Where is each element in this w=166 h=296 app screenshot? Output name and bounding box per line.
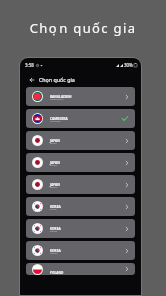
staticText: POLAND bbox=[50, 271, 64, 275]
button[interactable]: KOREA bbox=[26, 219, 135, 238]
button[interactable]: Back bbox=[27, 75, 36, 84]
button[interactable]: CAMBODIA bbox=[26, 109, 135, 128]
button[interactable]: JAPAN bbox=[26, 153, 135, 172]
staticText: japan2 bbox=[50, 164, 58, 167]
staticText: KOREA bbox=[50, 249, 61, 253]
staticText: JAPAN bbox=[50, 161, 60, 165]
staticText: Chọn quốc gia bbox=[39, 76, 75, 83]
button[interactable]: POLAND bbox=[26, 263, 135, 275]
staticText: 3:58 bbox=[25, 62, 34, 68]
button[interactable]: KOREA bbox=[26, 197, 135, 216]
button[interactable]: JAPAN bbox=[26, 175, 135, 194]
staticText: japan3 bbox=[50, 186, 58, 189]
staticText: Chọn quốc gia bbox=[0, 19, 166, 37]
staticText: JAPAN bbox=[50, 183, 60, 187]
staticText: cambodia bbox=[50, 120, 61, 123]
staticText: korea3 bbox=[50, 252, 58, 255]
staticText: korea2 bbox=[50, 230, 58, 233]
button[interactable]: KOREA bbox=[26, 241, 135, 260]
staticText: korea1 bbox=[50, 208, 58, 211]
staticText: 30% bbox=[124, 62, 133, 68]
staticText: JAPAN bbox=[50, 139, 60, 143]
staticText: CAMBODIA bbox=[50, 117, 68, 121]
staticText: japan1 bbox=[50, 142, 58, 145]
staticText: KOREA bbox=[50, 205, 61, 209]
staticText: KOREA bbox=[50, 227, 61, 231]
staticText: BANGLADESH bbox=[50, 95, 72, 99]
button[interactable]: BANGLADESH bbox=[26, 87, 135, 106]
button[interactable]: JAPAN bbox=[26, 131, 135, 150]
staticText: bangladeshi bbox=[50, 98, 64, 101]
